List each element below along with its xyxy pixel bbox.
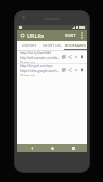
button[interactable]: http://bit.ly/2weVdkS — [17, 51, 87, 63]
staticText: https://sites.google.com/view/xyz — [20, 69, 60, 73]
button[interactable]: More options — [79, 31, 84, 40]
staticText: HISTORY — [22, 43, 37, 48]
button[interactable]: Share — [67, 65, 73, 75]
button[interactable]: Copy — [61, 65, 67, 75]
staticText: SORT — [65, 33, 76, 39]
button[interactable]: Delete — [73, 65, 79, 75]
staticText: http://w3.example.com/abc/definition — [20, 56, 60, 60]
staticText: 28 mins ago — [20, 74, 35, 76]
button[interactable]: Bookmark — [79, 52, 85, 62]
staticText: http://tinyurl.com/xyz — [20, 64, 53, 68]
button[interactable]: http://tinyurl.com/xyz — [17, 64, 87, 76]
button[interactable]: Copy — [61, 52, 67, 62]
button[interactable]: Recents — [67, 144, 79, 152]
button[interactable]: SORT — [64, 33, 77, 39]
button[interactable]: SHORT URL — [41, 41, 64, 49]
button[interactable]: Delete — [73, 52, 79, 62]
staticText: URLite — [27, 32, 64, 39]
staticText: SHORT URL — [43, 43, 62, 48]
button[interactable]: Bookmark — [79, 65, 85, 75]
button[interactable]: Back — [26, 144, 38, 152]
staticText: 28 mins ago — [20, 61, 35, 63]
button[interactable]: HISTORY — [17, 41, 41, 49]
button[interactable]: BOOKMARKS — [64, 41, 87, 49]
staticText: BOOKMARKS — [65, 43, 87, 48]
button[interactable]: Share — [67, 52, 73, 62]
button[interactable]: App icon — [20, 33, 25, 38]
button[interactable]: Home — [46, 144, 58, 152]
staticText: http://bit.ly/2weVdkS — [20, 51, 52, 55]
